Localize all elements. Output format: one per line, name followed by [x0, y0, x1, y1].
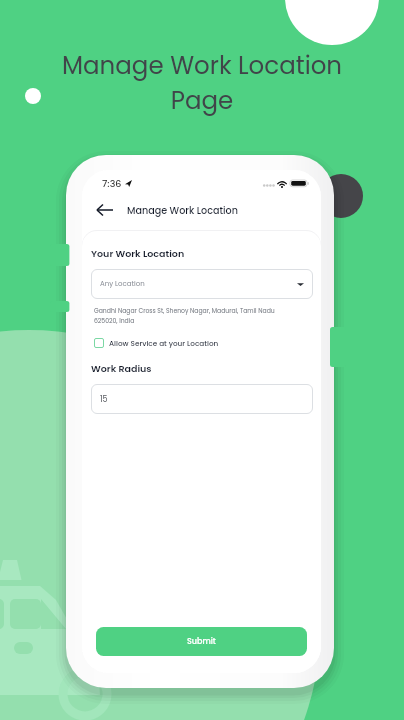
staticText: Your Work Location — [91, 247, 185, 260]
staticText: Allow Service at your Location — [109, 338, 219, 348]
staticText: Manage Work Location — [127, 204, 238, 217]
button[interactable]: Back — [93, 199, 115, 221]
staticText: 15 — [100, 394, 108, 405]
button[interactable]: Any Location — [91, 269, 313, 299]
staticText: Work Radius — [91, 362, 152, 375]
staticText: Any Location — [100, 279, 145, 289]
staticText: Manage Work Location Page — [32, 48, 372, 117]
staticText: Gandhi Nagar Cross St, Shenoy Nagar, Mad… — [94, 307, 275, 325]
staticText: 7:36 — [102, 177, 122, 190]
staticText: Submit — [187, 636, 216, 647]
button[interactable]: 15 — [91, 384, 313, 414]
button[interactable]: Allow Service at your Location — [94, 338, 219, 348]
button[interactable]: Submit — [96, 627, 307, 656]
